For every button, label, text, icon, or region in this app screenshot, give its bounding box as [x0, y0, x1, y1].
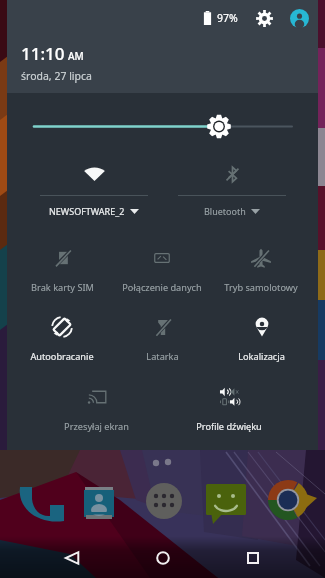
button[interactable]: Home [143, 538, 183, 578]
button[interactable]: Przesyłaj ekran [46, 376, 146, 434]
staticText: Połączenie danych [122, 281, 202, 294]
button[interactable]: Lokalizacja [211, 306, 311, 364]
button[interactable]: Profile dźwięku [179, 376, 279, 434]
button[interactable]: Brak karty SIM [12, 237, 112, 295]
staticText: AM [68, 49, 84, 63]
staticText: Profile dźwięku [196, 420, 262, 433]
staticText: Przesyłaj ekran [64, 420, 129, 433]
staticText: Autoobracanie [30, 350, 94, 363]
button[interactable]: Recent apps [233, 538, 273, 578]
button[interactable]: Autoobracanie [12, 306, 112, 364]
button[interactable]: Latarka [112, 306, 212, 364]
staticText: Lokalizacja [238, 350, 285, 363]
staticText: 11:10 [21, 42, 65, 65]
button[interactable]: NEWSOFTWARE_2 [29, 156, 159, 220]
staticText: Bluetooth [204, 205, 246, 217]
staticText: środa, 27 lipca [21, 69, 92, 83]
staticText: 97% [217, 11, 238, 25]
button[interactable]: Bluetooth [167, 156, 297, 220]
button[interactable]: User profile [287, 6, 311, 30]
staticText: Latarka [146, 350, 179, 363]
button[interactable]: Połączenie danych [112, 237, 212, 295]
button[interactable]: Back [52, 538, 92, 578]
button[interactable]: Tryb samolotowy [211, 237, 311, 295]
button[interactable]: Settings [252, 6, 276, 30]
staticText: Tryb samolotowy [224, 281, 298, 294]
staticText: NEWSOFTWARE_2 [49, 205, 125, 217]
staticText: Brak karty SIM [31, 281, 94, 294]
